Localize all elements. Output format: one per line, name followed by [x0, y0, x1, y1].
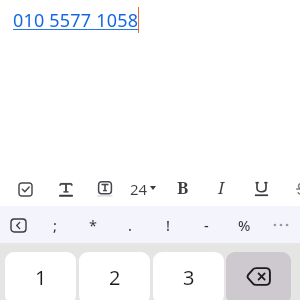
button[interactable]: % — [231, 212, 257, 238]
staticText: * — [89, 215, 97, 235]
staticText: 24 — [130, 179, 148, 199]
staticText: - — [204, 215, 209, 235]
staticText: 2 — [109, 264, 121, 291]
button[interactable]: * — [80, 212, 106, 238]
button[interactable]: Previous symbols — [5, 212, 32, 238]
button[interactable]: Italic — [209, 175, 234, 200]
button[interactable]: Checklist — [13, 177, 38, 202]
staticText: . — [128, 215, 132, 235]
staticText: I — [218, 176, 225, 199]
button[interactable]: Underline — [249, 176, 274, 201]
button[interactable]: Bold — [170, 175, 195, 200]
button[interactable]: . — [117, 212, 143, 238]
staticText: B — [177, 176, 189, 199]
button[interactable]: Text color — [53, 176, 78, 201]
button[interactable]: Backspace — [226, 252, 291, 300]
button[interactable]: ; — [42, 212, 68, 238]
staticText: 3 — [183, 264, 195, 291]
staticText: % — [238, 215, 251, 235]
button[interactable]: Strikethrough — [288, 176, 300, 201]
staticText: ! — [166, 215, 170, 235]
button[interactable]: 3 — [153, 252, 224, 300]
button[interactable]: 1 — [5, 252, 76, 300]
button[interactable]: Text highlight — [92, 176, 117, 201]
button[interactable]: ! — [155, 212, 181, 238]
staticText: 010 5577 1058 — [13, 8, 139, 33]
staticText: 1 — [35, 264, 47, 291]
button[interactable]: - — [193, 212, 219, 238]
button[interactable]: 24 — [130, 175, 156, 200]
button[interactable]: More symbols — [268, 212, 294, 238]
staticText: ; — [53, 215, 57, 235]
button[interactable]: 2 — [79, 252, 150, 300]
